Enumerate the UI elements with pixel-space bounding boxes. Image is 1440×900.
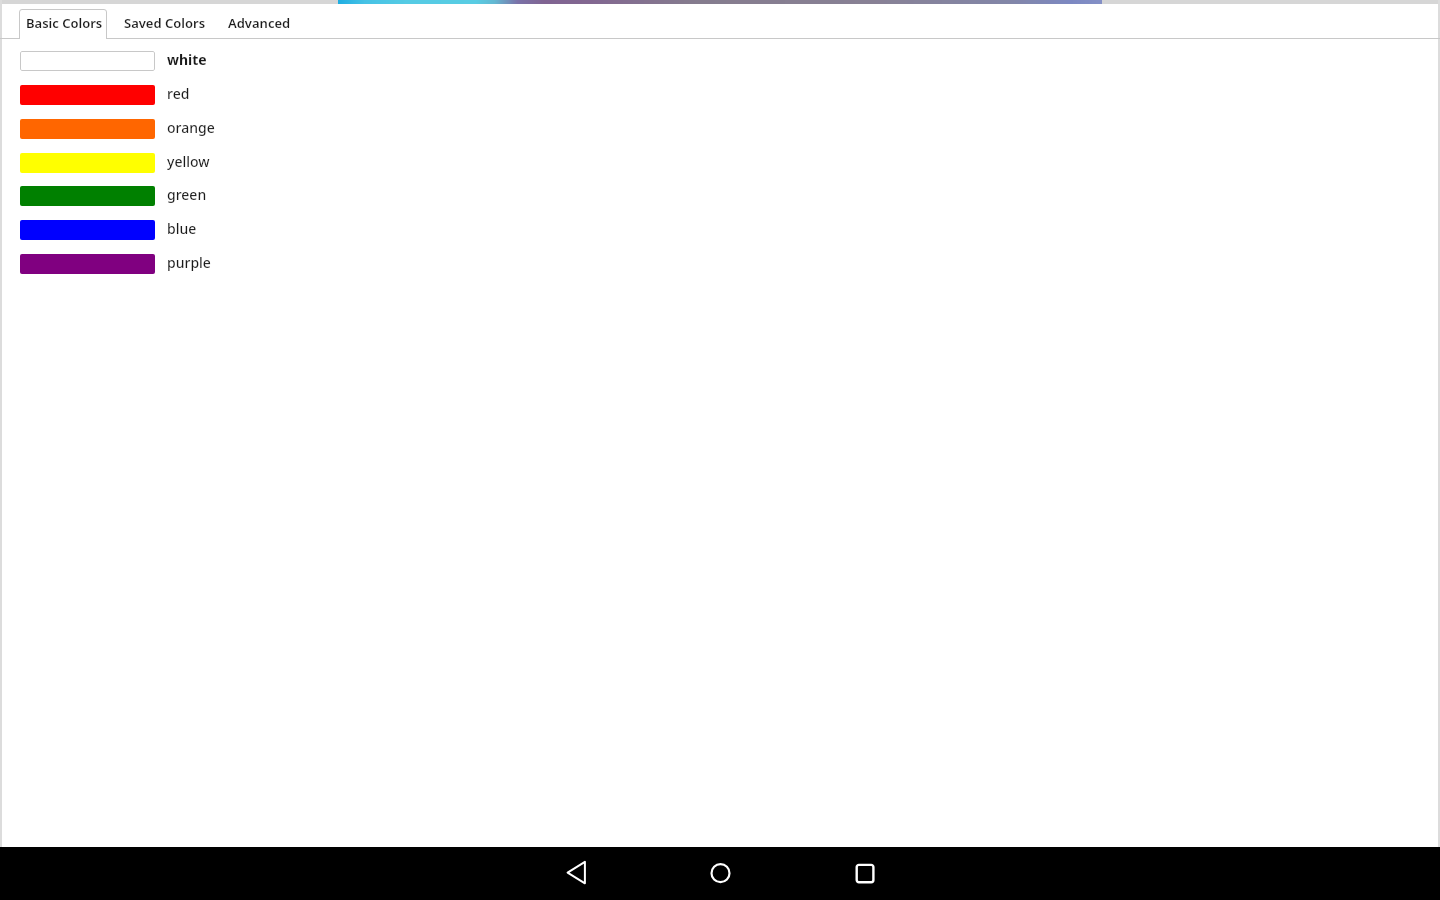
button[interactable]: yellow (0, 146, 1440, 180)
staticText: blue (167, 219, 197, 238)
button[interactable]: green (0, 179, 1440, 213)
staticText: red (167, 84, 190, 103)
button[interactable]: purple (0, 247, 1440, 281)
button[interactable]: orange (0, 112, 1440, 146)
button[interactable]: Home (696, 847, 744, 895)
staticText: Saved Colors (124, 14, 206, 32)
button[interactable]: Back (552, 847, 600, 895)
button[interactable]: Advanced (219, 9, 297, 38)
button[interactable]: Recent apps (842, 847, 890, 895)
button[interactable]: Saved Colors (115, 9, 212, 38)
staticText: purple (167, 253, 211, 272)
button[interactable]: Basic Colors (19, 9, 107, 39)
staticText: orange (167, 118, 215, 137)
button[interactable]: white (0, 44, 1440, 78)
button[interactable]: red (0, 78, 1440, 112)
staticText: yellow (167, 152, 210, 171)
staticText: Advanced (228, 14, 291, 32)
button[interactable]: blue (0, 213, 1440, 247)
staticText: white (167, 50, 207, 69)
staticText: green (167, 185, 207, 204)
staticText: Basic Colors (26, 14, 103, 32)
